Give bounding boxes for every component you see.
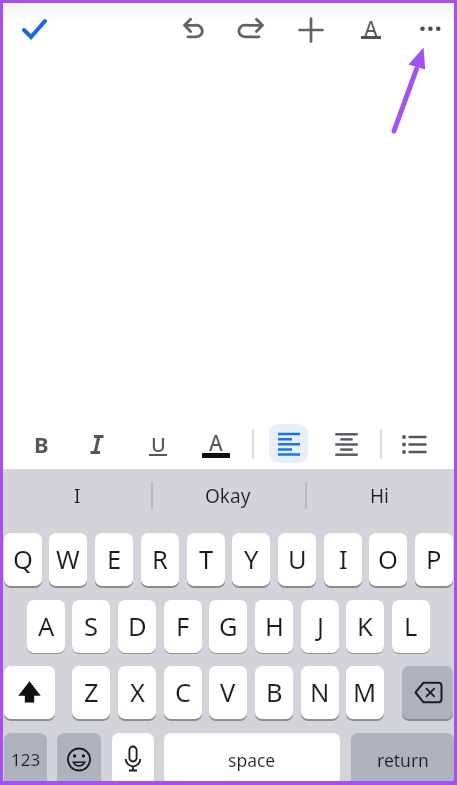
button[interactable] xyxy=(269,424,308,463)
button[interactable] xyxy=(289,8,333,52)
button[interactable]: F xyxy=(164,600,202,653)
button[interactable]: I xyxy=(3,469,151,523)
button[interactable]: A xyxy=(194,422,238,466)
button[interactable] xyxy=(112,733,154,785)
button[interactable]: X xyxy=(118,666,156,719)
staticText: U xyxy=(288,542,307,577)
button[interactable] xyxy=(392,422,436,466)
button[interactable] xyxy=(57,733,101,785)
staticText: space xyxy=(228,748,276,772)
button[interactable] xyxy=(324,422,368,466)
button[interactable]: A xyxy=(349,8,393,52)
button[interactable] xyxy=(13,8,57,52)
button[interactable]: return xyxy=(351,733,454,785)
button[interactable]: I xyxy=(324,533,362,586)
staticText: Y xyxy=(244,542,259,577)
staticText: return xyxy=(377,748,429,772)
staticText: F xyxy=(176,609,190,644)
staticText: A xyxy=(209,429,223,458)
button[interactable]: M xyxy=(346,666,384,719)
button[interactable]: Okay xyxy=(151,469,305,523)
staticText: Okay xyxy=(205,483,251,509)
button[interactable]: Q xyxy=(4,533,42,586)
button[interactable]: W xyxy=(49,533,87,586)
button[interactable] xyxy=(4,666,55,719)
button[interactable]: L xyxy=(392,600,430,653)
button[interactable] xyxy=(402,666,453,719)
button[interactable]: K xyxy=(346,600,384,653)
staticText: B xyxy=(34,429,49,459)
staticText: Q xyxy=(13,542,33,577)
staticText: 123 xyxy=(11,748,41,771)
button[interactable] xyxy=(75,422,119,466)
button[interactable]: J xyxy=(301,600,339,653)
button[interactable]: B xyxy=(19,422,63,466)
staticText: W xyxy=(56,542,80,577)
button[interactable]: Hi xyxy=(305,469,454,523)
staticText: Z xyxy=(84,675,99,710)
button[interactable]: P xyxy=(415,533,453,586)
staticText: U xyxy=(151,431,166,458)
staticText: G xyxy=(219,609,238,644)
button[interactable] xyxy=(173,8,217,52)
button[interactable]: 123 xyxy=(4,733,47,785)
staticText: K xyxy=(357,609,373,644)
staticText: J xyxy=(317,609,324,644)
staticText: B xyxy=(266,675,283,710)
button[interactable]: V xyxy=(209,666,247,719)
staticText: L xyxy=(404,609,418,644)
button[interactable]: A xyxy=(27,600,65,653)
staticText: P xyxy=(426,542,442,577)
button[interactable] xyxy=(230,8,274,52)
staticText: X xyxy=(130,675,145,710)
button[interactable]: T xyxy=(187,533,225,586)
staticText: V xyxy=(220,675,236,710)
staticText: H xyxy=(265,609,284,644)
staticText: E xyxy=(107,542,122,577)
button[interactable]: H xyxy=(255,600,293,653)
button[interactable]: R xyxy=(141,533,179,586)
button[interactable]: Y xyxy=(232,533,270,586)
staticText: T xyxy=(199,542,214,577)
button[interactable]: S xyxy=(72,600,110,653)
button[interactable]: G xyxy=(209,600,247,653)
button[interactable]: B xyxy=(255,666,293,719)
staticText: I xyxy=(339,542,348,577)
button[interactable]: Z xyxy=(72,666,110,719)
staticText: C xyxy=(175,675,192,710)
staticText: M xyxy=(353,675,377,710)
staticText: A xyxy=(38,609,55,644)
staticText: O xyxy=(378,542,398,577)
button[interactable] xyxy=(408,7,452,51)
staticText: Hi xyxy=(370,483,389,509)
staticText: N xyxy=(310,675,330,710)
button[interactable]: D xyxy=(118,600,156,653)
staticText: I xyxy=(74,483,81,509)
staticText: A xyxy=(364,15,378,44)
staticText: R xyxy=(152,542,168,577)
button[interactable]: C xyxy=(164,666,202,719)
button[interactable]: N xyxy=(301,666,339,719)
staticText: S xyxy=(84,609,98,644)
button[interactable]: space xyxy=(164,733,340,785)
staticText: D xyxy=(128,609,147,644)
button[interactable]: U xyxy=(136,422,180,466)
button[interactable]: U xyxy=(278,533,316,586)
button[interactable]: E xyxy=(95,533,133,586)
button[interactable]: O xyxy=(369,533,407,586)
